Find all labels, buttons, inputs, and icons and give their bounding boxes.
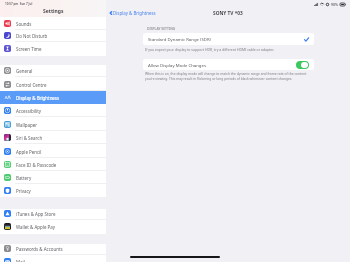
- staticText: DISPLAY SETTING: [147, 26, 176, 31]
- staticText: Screen Time: [16, 46, 42, 52]
- staticText: 10:57 pm Sun 7 Jul: [5, 2, 33, 6]
- button[interactable]: Apple Pencil: [0, 145, 106, 158]
- staticText: Accessibility: [16, 108, 42, 114]
- staticText: Wallet & Apple Pay: [16, 224, 56, 230]
- button[interactable]: Passwords & Accounts: [0, 242, 106, 255]
- button[interactable]: Battery: [0, 171, 106, 184]
- staticText: Control Centre: [16, 82, 47, 88]
- staticText: SONY TV *03: [213, 10, 243, 17]
- staticText: Allow Display Mode Changes: [148, 62, 206, 68]
- staticText: Display & Brightness: [16, 95, 60, 101]
- staticText: iTunes & App Store: [16, 211, 56, 217]
- button[interactable]: Face ID & Passcode: [0, 158, 106, 171]
- staticText: Sounds: [16, 21, 32, 27]
- staticText: Battery: [16, 175, 32, 181]
- staticText: Privacy: [16, 188, 31, 194]
- staticText: Settings: [43, 8, 64, 15]
- button[interactable]: Standard Dynamic Range (SDR): [143, 33, 314, 45]
- staticText: Wallpaper: [16, 122, 38, 128]
- button[interactable]: General: [0, 64, 106, 77]
- staticText: 90%: [331, 2, 338, 7]
- staticText: Mail: [16, 259, 25, 262]
- button[interactable]: Wallpaper: [0, 118, 106, 131]
- button[interactable]: Display & Brightness: [110, 10, 156, 16]
- staticText: Apple Pencil: [16, 149, 42, 155]
- button[interactable]: Siri & Search: [0, 131, 106, 144]
- button[interactable]: iTunes & App Store: [0, 207, 106, 220]
- button[interactable]: Allow Display Mode Changes toggle: [296, 61, 309, 69]
- staticText: Do Not Disturb: [16, 33, 48, 39]
- button[interactable]: Sounds: [0, 17, 106, 30]
- staticText: Standard Dynamic Range (SDR): [148, 36, 211, 42]
- button[interactable]: Screen Time: [0, 42, 106, 55]
- staticText: Siri & Search: [16, 135, 43, 141]
- staticText: Face ID & Passcode: [16, 162, 57, 168]
- button[interactable]: Accessibility: [0, 104, 106, 117]
- staticText: Passwords & Accounts: [16, 246, 63, 252]
- button[interactable]: Privacy: [0, 184, 106, 197]
- staticText: General: [16, 68, 33, 74]
- button[interactable]: Mail: [0, 255, 106, 262]
- button[interactable]: Wallet & Apple Pay: [0, 220, 106, 233]
- button[interactable]: Display & Brightness: [0, 91, 106, 104]
- staticText: When this is on, the display mode will c…: [145, 71, 307, 81]
- button[interactable]: Control Centre: [0, 78, 106, 91]
- button[interactable]: Do Not Disturb: [0, 29, 106, 42]
- staticText: If you expect your display to support HD…: [145, 47, 275, 52]
- staticText: Display & Brightness: [113, 10, 156, 16]
